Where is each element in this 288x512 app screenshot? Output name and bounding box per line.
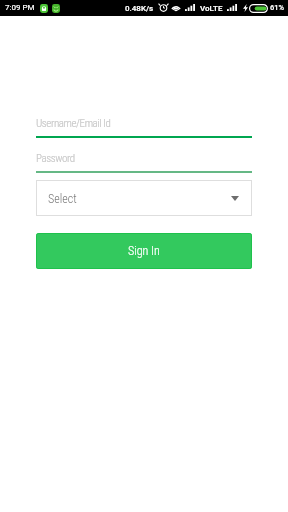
button[interactable]: Select	[36, 180, 252, 216]
staticText: Select	[48, 192, 77, 206]
staticText: Sign In	[128, 244, 160, 258]
button[interactable]: Sign In	[36, 233, 252, 269]
staticText: 0.48K/s	[125, 4, 154, 13]
staticText: Username/Email Id	[36, 117, 111, 130]
staticText: Password	[36, 152, 75, 165]
button[interactable]	[36, 149, 252, 173]
staticText: 61%	[270, 3, 285, 12]
button[interactable]	[36, 114, 252, 138]
staticText: VoLTE	[200, 4, 223, 13]
staticText: 7:09 PM	[5, 3, 35, 12]
